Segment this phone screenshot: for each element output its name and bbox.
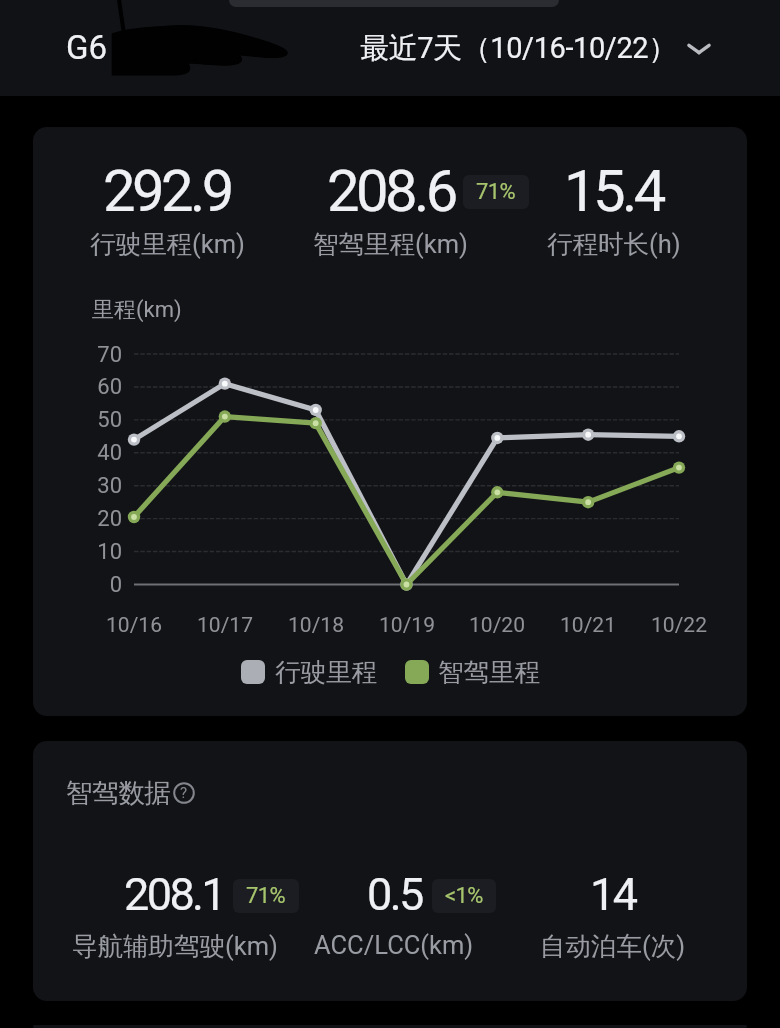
- staticText: ?: [180, 784, 188, 802]
- staticText: 14: [590, 868, 636, 921]
- staticText: 10/17: [180, 613, 270, 638]
- staticText: 60: [33, 374, 122, 400]
- button[interactable]: 智驾数据: [66, 776, 195, 809]
- staticText: 20: [33, 506, 122, 532]
- staticText: 行程时长(h): [547, 228, 681, 260]
- staticText: 10/22: [634, 613, 724, 638]
- staticText: ACC/LCC(km): [314, 930, 474, 960]
- staticText: 10/20: [452, 613, 542, 638]
- staticText: 0.5: [367, 868, 422, 921]
- staticText: 71%: [476, 179, 516, 205]
- staticText: 10: [33, 539, 122, 565]
- staticText: 行驶里程: [275, 656, 377, 688]
- staticText: 最近7天（10/16-10/22）: [360, 30, 677, 67]
- staticText: 智驾里程(km): [313, 228, 468, 260]
- staticText: 71%: [246, 883, 286, 909]
- staticText: 10/19: [362, 613, 452, 638]
- staticText: 0: [33, 572, 122, 598]
- other: Expand date range: [685, 35, 713, 63]
- staticText: 40: [33, 440, 122, 466]
- staticText: 导航辅助驾驶(km): [72, 930, 278, 962]
- button[interactable]: 最近7天（10/16-10/22）: [360, 30, 713, 67]
- staticText: 208.6: [327, 157, 455, 225]
- staticText: 30: [33, 473, 122, 499]
- staticText: G6: [66, 28, 108, 67]
- staticText: 70: [33, 342, 122, 368]
- staticText: 50: [33, 407, 122, 433]
- staticText: 智驾里程: [438, 656, 540, 688]
- staticText: <1%: [445, 883, 483, 909]
- other: Help: [173, 782, 195, 804]
- staticText: 10/18: [271, 613, 361, 638]
- staticText: 10/16: [89, 613, 179, 638]
- staticText: 行驶里程(km): [90, 228, 245, 260]
- staticText: 10/21: [543, 613, 633, 638]
- staticText: 智驾数据: [66, 776, 171, 809]
- button[interactable]: G6: [66, 28, 108, 67]
- staticText: 15.4: [564, 157, 663, 225]
- staticText: 208.1: [124, 868, 225, 921]
- staticText: 自动泊车(次): [540, 930, 686, 962]
- staticText: 里程(km): [92, 296, 182, 324]
- staticText: 292.9: [103, 157, 231, 225]
